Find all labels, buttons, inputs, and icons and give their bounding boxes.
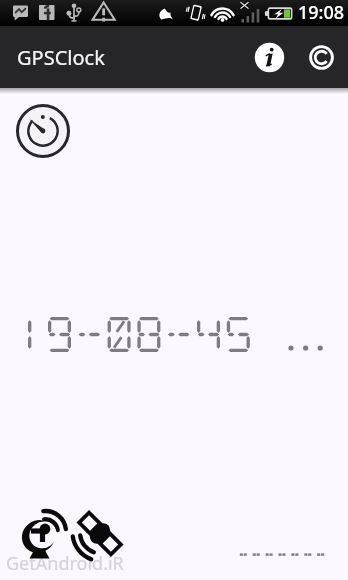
staticText: 19:08 (298, 0, 345, 25)
button[interactable]: Info (251, 40, 288, 74)
staticText: GetAndroid.iR (6, 551, 124, 576)
staticText: GPSClock (17, 44, 105, 71)
button[interactable]: Start stopwatch (16, 104, 70, 158)
button[interactable]: About (303, 40, 339, 74)
